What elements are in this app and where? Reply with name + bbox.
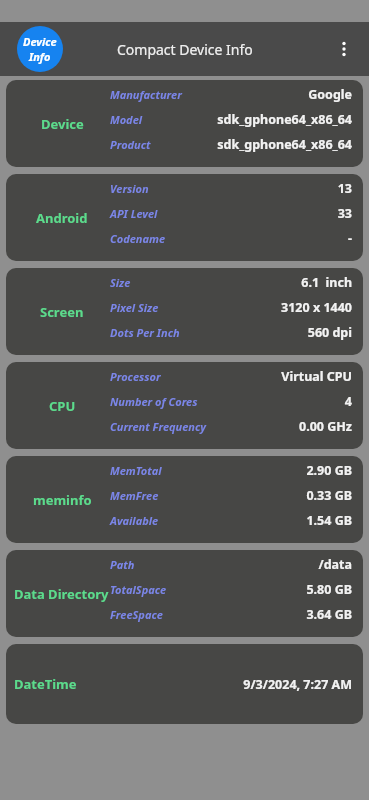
staticText: MemFree (110, 488, 159, 503)
staticText: 0.00 GHz (299, 418, 352, 435)
staticText: 3.64 GB (306, 606, 352, 623)
staticText: sdk_gphone64_x86_64 (217, 136, 352, 153)
staticText: Available (110, 513, 159, 528)
staticText: meminfo (33, 491, 92, 509)
button[interactable]: CPU (6, 362, 363, 449)
staticText: 3120 x 1440 (281, 299, 352, 316)
staticText: TotalSpace (110, 582, 167, 597)
staticText: Info (29, 49, 51, 64)
staticText: Device (41, 115, 84, 133)
button[interactable]: Device Info logo (17, 26, 63, 72)
button[interactable]: Data Directory (6, 550, 363, 637)
staticText: Screen (40, 303, 84, 321)
staticText: Model (110, 112, 143, 127)
staticText: 13 (337, 180, 352, 197)
staticText: Codename (110, 231, 166, 246)
staticText: Path (110, 557, 135, 572)
staticText: 4 (344, 393, 352, 410)
staticText: 5.80 GB (306, 581, 352, 598)
staticText: FreeSpace (110, 607, 163, 622)
staticText: Data Directory (14, 585, 109, 603)
staticText: Dots Per Inch (110, 325, 180, 340)
staticText: Number of Cores (110, 394, 198, 409)
staticText: Virtual CPU (281, 368, 352, 385)
staticText: 560 dpi (307, 324, 352, 341)
staticText: 6.1 inch (301, 274, 352, 291)
button[interactable]: Screen (6, 268, 363, 355)
staticText: Size (110, 275, 131, 290)
staticText: MemTotal (110, 463, 162, 478)
button[interactable]: More options (327, 32, 361, 66)
staticText: 2.90 GB (306, 462, 352, 479)
staticText: DateTime (14, 675, 77, 693)
staticText: Device (23, 34, 57, 49)
staticText: /data (318, 556, 352, 573)
staticText: Processor (110, 369, 161, 384)
staticText: 1.54 GB (306, 512, 352, 529)
staticText: 33 (337, 205, 352, 222)
button[interactable]: DateTime (6, 644, 363, 724)
staticText: CPU (49, 397, 76, 415)
staticText: Current Frequency (110, 419, 206, 434)
staticText: Product (110, 137, 151, 152)
button[interactable]: Device (6, 80, 363, 167)
staticText: Compact Device Info (117, 40, 253, 59)
staticText: 0.33 GB (306, 487, 352, 504)
staticText: sdk_gphone64_x86_64 (217, 111, 352, 128)
button[interactable]: Android (6, 174, 363, 261)
staticText: 9/3/2024, 7:27 AM (110, 676, 352, 693)
staticText: Google (308, 86, 352, 103)
staticText: Pixel Size (110, 300, 159, 315)
staticText: API Level (110, 206, 158, 221)
staticText: Android (36, 209, 88, 227)
staticText: Version (110, 181, 149, 196)
staticText: - (347, 230, 352, 247)
button[interactable]: meminfo (6, 456, 363, 543)
staticText: Manufacturer (110, 87, 182, 102)
